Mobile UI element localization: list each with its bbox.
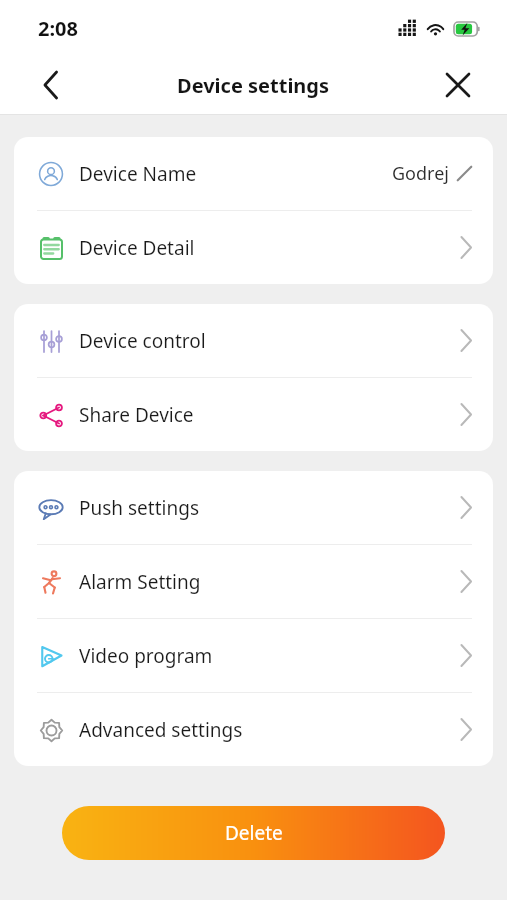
staticText: Delete bbox=[225, 820, 283, 846]
button[interactable]: Device Name bbox=[14, 137, 493, 210]
button[interactable]: Push settings bbox=[14, 471, 493, 544]
button[interactable]: Device control bbox=[14, 304, 493, 377]
staticText: Device Name bbox=[79, 161, 392, 187]
staticText: 2:08 bbox=[38, 15, 78, 42]
button[interactable]: Alarm Setting bbox=[14, 545, 493, 618]
staticText: Device control bbox=[79, 328, 460, 354]
button[interactable]: Delete bbox=[62, 806, 445, 860]
button[interactable]: Close bbox=[435, 62, 481, 108]
staticText: Advanced settings bbox=[79, 717, 460, 743]
staticText: Device settings bbox=[177, 72, 330, 99]
button[interactable]: Device Detail bbox=[14, 211, 493, 284]
button[interactable]: Back bbox=[28, 62, 74, 108]
staticText: Alarm Setting bbox=[79, 569, 460, 595]
staticText: Video program bbox=[79, 643, 460, 669]
staticText: Share Device bbox=[79, 402, 460, 428]
staticText: Device Detail bbox=[79, 235, 460, 261]
staticText: Godrej bbox=[392, 161, 449, 186]
staticText: Push settings bbox=[79, 495, 460, 521]
button[interactable]: Video program bbox=[14, 619, 493, 692]
button[interactable]: Share Device bbox=[14, 378, 493, 451]
button[interactable]: Advanced settings bbox=[14, 693, 493, 766]
